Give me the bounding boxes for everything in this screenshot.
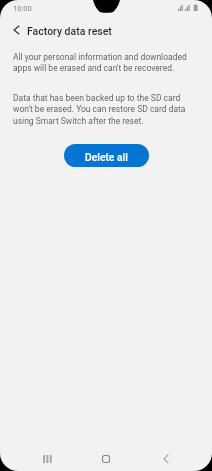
staticText: Factory data reset xyxy=(27,25,112,37)
staticText: 10:00 xyxy=(13,4,32,13)
button[interactable]: Recents xyxy=(18,447,76,471)
button[interactable]: Back xyxy=(135,447,194,471)
button[interactable]: Home xyxy=(76,447,135,471)
staticText: Delete all xyxy=(85,151,128,163)
button[interactable]: Navigate up xyxy=(7,21,25,39)
button[interactable]: Delete all xyxy=(64,144,149,167)
staticText: All your personal information and downlo… xyxy=(13,52,199,73)
staticText: Data that has been backed up to the SD c… xyxy=(13,93,199,126)
